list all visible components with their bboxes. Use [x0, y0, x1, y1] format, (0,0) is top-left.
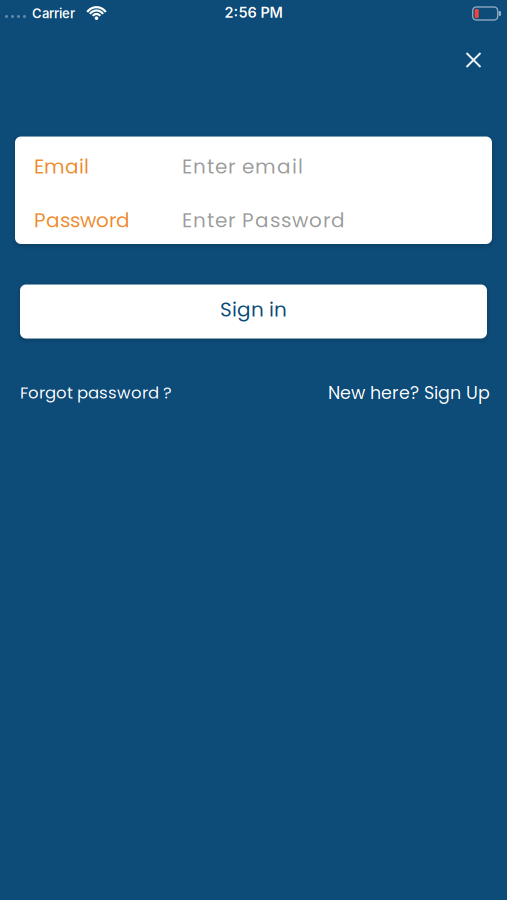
button[interactable]: Close	[466, 52, 481, 67]
staticText: 2:56 PM	[224, 4, 282, 21]
staticText: E n t e r P a s s w o r d	[182, 206, 345, 234]
staticText: Carrier	[32, 6, 75, 21]
button[interactable]: Sign in	[20, 284, 487, 338]
button[interactable]: Password, Enter Password	[15, 190, 492, 244]
button[interactable]: New here? Sign Up	[328, 380, 490, 405]
staticText: Sign in	[220, 295, 287, 323]
button[interactable]: Email, Enter email	[15, 136, 492, 190]
staticText: Forgot password ?	[20, 381, 172, 404]
staticText: Password	[34, 206, 130, 234]
staticText: E n t e r e m a i l	[182, 152, 303, 180]
staticText: New here? Sign Up	[328, 380, 490, 405]
staticText: Email	[34, 152, 89, 180]
button[interactable]: Forgot password ?	[20, 381, 172, 404]
